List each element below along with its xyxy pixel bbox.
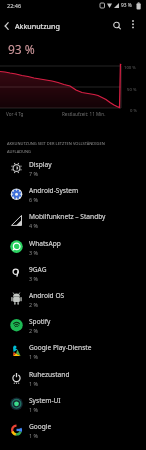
staticText: 4 % — [29, 222, 38, 229]
button[interactable]: Android-System — [0, 181, 146, 207]
button[interactable]: Ruhezustand — [0, 365, 146, 391]
button[interactable]: Android OS — [0, 286, 146, 312]
staticText: 2 % — [29, 301, 38, 308]
button[interactable]: 9GAG — [0, 260, 146, 286]
staticText: 2 % — [29, 327, 38, 334]
staticText: 6 % — [29, 196, 38, 203]
staticText: Google — [29, 422, 52, 431]
staticText: Spotify — [29, 317, 51, 326]
staticText: Ruhezustand — [29, 370, 70, 379]
staticText: 9GAG — [29, 265, 47, 274]
staticText: Android OS — [29, 291, 65, 300]
button[interactable] — [126, 16, 142, 33]
staticText: 1 % — [29, 380, 38, 387]
staticText: Display — [29, 160, 52, 169]
staticText: System-UI — [29, 396, 61, 405]
staticText: 50 % — [127, 87, 137, 93]
staticText: 1 % — [29, 353, 38, 360]
staticText: Mobilfunknetz – Standby — [29, 212, 106, 221]
button[interactable] — [108, 16, 126, 33]
staticText: AUFLADUNG — [7, 149, 32, 154]
button[interactable]: Google Play-Dienste — [0, 338, 146, 364]
staticText: 100 % — [124, 65, 136, 71]
staticText: Google Play-Dienste — [29, 343, 92, 352]
staticText: 3 % — [29, 249, 38, 256]
staticText: 1 % — [29, 406, 38, 413]
staticText: Akkunutzung — [15, 21, 60, 31]
staticText: WhatsApp — [29, 239, 61, 248]
staticText: 0 % — [130, 108, 137, 114]
staticText: 93 % — [121, 2, 132, 9]
staticText: 93 % — [8, 41, 35, 57]
staticText: 3 % — [29, 275, 38, 282]
button[interactable]: Mobilfunknetz – Standby — [0, 207, 146, 233]
staticText: Android-System — [29, 186, 79, 195]
staticText: Vor 4 Tg — [6, 111, 24, 117]
staticText: 1 % — [29, 432, 38, 439]
button[interactable]: Display — [0, 155, 146, 181]
button[interactable]: Spotify — [0, 312, 146, 338]
button[interactable]: WhatsApp — [0, 234, 146, 260]
staticText: 7 % — [29, 170, 38, 177]
button[interactable] — [0, 16, 16, 32]
button[interactable]: Google — [0, 417, 146, 443]
staticText: 22:46 — [7, 2, 22, 9]
staticText: AKKUNUTZUNG SEIT DER LETZTEN VOLLSTÄNDIG… — [7, 141, 105, 146]
button[interactable]: System-UI — [0, 391, 146, 417]
staticText: Restlaufzeit: 11 Min. — [62, 111, 106, 117]
